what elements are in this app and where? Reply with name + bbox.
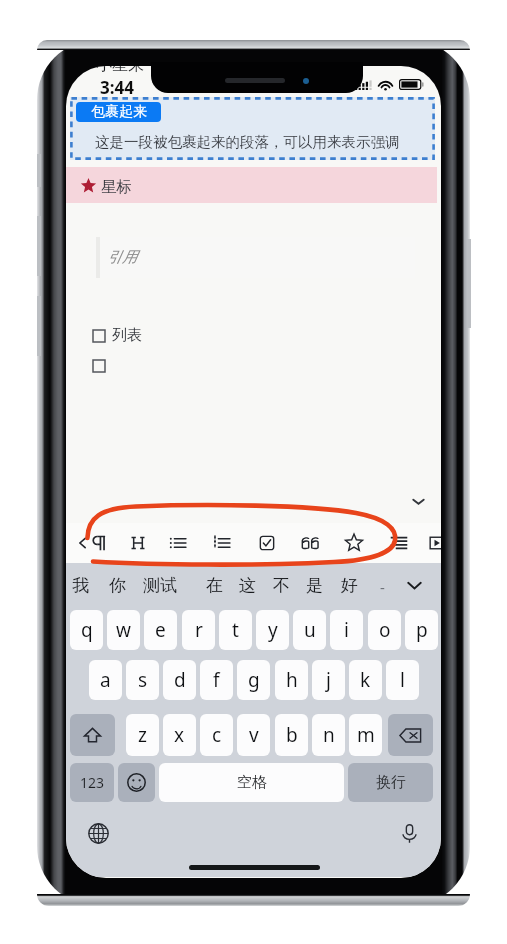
button[interactable]: 星标 <box>66 167 437 203</box>
button[interactable]: w <box>107 610 140 650</box>
staticText: j <box>326 667 331 693</box>
staticText: u <box>304 617 316 643</box>
button[interactable]: a <box>89 660 122 700</box>
button[interactable]: u <box>293 610 326 650</box>
staticText: 123 <box>80 773 105 792</box>
staticText: o <box>379 617 391 643</box>
staticText: 不 <box>273 575 290 596</box>
button[interactable]: 你 <box>109 571 126 599</box>
button[interactable]: Backspace <box>388 714 433 756</box>
button[interactable]: 测试 <box>143 571 177 599</box>
button[interactable]: Emoji <box>118 763 155 802</box>
staticText: k <box>360 667 371 693</box>
staticText: y <box>268 617 278 643</box>
staticText: t <box>232 617 239 643</box>
staticText: 好 <box>341 575 358 596</box>
button[interactable]: 换行 <box>348 763 433 802</box>
button[interactable]: z <box>126 714 159 756</box>
staticText: d <box>174 667 186 693</box>
button[interactable]: j <box>312 660 345 700</box>
button[interactable]: Shift <box>70 714 115 756</box>
staticText: - <box>380 577 385 597</box>
button[interactable]: More <box>425 531 441 555</box>
button[interactable]: 好 <box>341 571 358 599</box>
button[interactable]: l <box>386 660 419 700</box>
staticText: l <box>400 667 405 693</box>
button[interactable]: f <box>200 660 233 700</box>
button[interactable]: Heading <box>126 531 150 555</box>
button[interactable]: 在 <box>206 571 223 599</box>
button[interactable]: Change language <box>83 818 113 848</box>
button[interactable]: 我 <box>72 571 89 599</box>
staticText: 我 <box>72 575 89 596</box>
staticText: b <box>286 722 298 748</box>
staticText: 测试 <box>143 575 177 596</box>
button[interactable]: g <box>237 660 270 700</box>
staticText: g <box>248 667 260 693</box>
staticText: 是 <box>306 575 323 596</box>
button[interactable]: 123 <box>70 763 114 802</box>
staticText: p <box>416 617 428 643</box>
button[interactable]: 引用 <box>93 237 415 278</box>
staticText: q <box>81 617 93 643</box>
staticText: 在 <box>206 575 223 596</box>
staticText: 空格 <box>237 773 267 792</box>
button[interactable]: e <box>144 610 177 650</box>
button[interactable]: 列表 <box>93 326 142 345</box>
button[interactable]: y <box>256 610 289 650</box>
staticText: 换行 <box>376 773 406 792</box>
staticText: 引用 <box>107 248 137 267</box>
staticText: h <box>286 667 298 693</box>
button[interactable]: t <box>219 610 252 650</box>
staticText: 你 <box>109 575 126 596</box>
staticText: s <box>138 667 148 693</box>
button[interactable]: s <box>126 660 159 700</box>
button[interactable]: v <box>237 714 270 756</box>
button[interactable]: b <box>275 714 308 756</box>
button[interactable]: 空格 <box>159 763 344 802</box>
button[interactable] <box>93 360 105 372</box>
button[interactable]: Voice input <box>394 818 424 848</box>
button[interactable]: Quote <box>298 531 322 555</box>
staticText: 小星来 <box>96 66 144 75</box>
button[interactable]: o <box>368 610 401 650</box>
staticText: n <box>323 722 335 748</box>
staticText: 这 <box>239 575 256 596</box>
button[interactable]: h <box>275 660 308 700</box>
staticText: i <box>344 617 349 643</box>
button[interactable]: Numbered list <box>210 531 234 555</box>
staticText: 列表 <box>112 326 142 345</box>
button[interactable]: i <box>330 610 363 650</box>
button[interactable]: k <box>349 660 382 700</box>
button[interactable]: m <box>349 714 382 756</box>
button[interactable]: d <box>163 660 196 700</box>
button[interactable]: q <box>70 610 103 650</box>
button[interactable]: Checklist <box>255 531 279 555</box>
button[interactable]: x <box>163 714 196 756</box>
staticText: 3:44 <box>100 76 134 99</box>
staticText: z <box>138 722 147 748</box>
staticText: m <box>357 722 375 748</box>
staticText: x <box>174 722 185 748</box>
staticText: e <box>155 617 166 643</box>
button[interactable]: 不 <box>273 571 290 599</box>
staticText: w <box>116 617 131 643</box>
button[interactable]: c <box>200 714 233 756</box>
button[interactable]: Hide keyboard <box>400 571 428 599</box>
button[interactable]: Previous <box>71 531 95 555</box>
button[interactable]: 包裹起来 <box>76 102 161 122</box>
staticText: f <box>213 667 220 693</box>
button[interactable]: 是 <box>306 571 323 599</box>
staticText: a <box>100 667 111 693</box>
button[interactable]: r <box>182 610 215 650</box>
staticText: r <box>195 617 203 643</box>
button[interactable]: Paragraph <box>87 531 111 555</box>
button[interactable]: Indent <box>387 531 411 555</box>
staticText: 包裹起来 <box>91 103 147 121</box>
button[interactable]: p <box>405 610 438 650</box>
button[interactable]: n <box>312 714 345 756</box>
button[interactable]: Collapse editor <box>405 488 431 514</box>
button[interactable]: Star <box>342 531 366 555</box>
button[interactable]: Bulleted list <box>166 531 190 555</box>
button[interactable]: 这 <box>239 571 256 599</box>
